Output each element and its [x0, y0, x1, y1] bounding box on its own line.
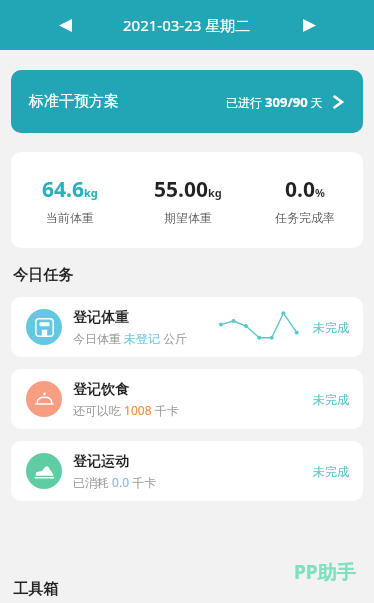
- button[interactable]: 登记体重: [11, 297, 363, 357]
- staticText: 55.00kg: [154, 175, 222, 204]
- staticText: 登记体重: [73, 309, 129, 327]
- staticText: 期望体重: [164, 210, 212, 225]
- staticText: 标准干预方案: [29, 92, 119, 111]
- button[interactable]: 55.00kg: [129, 175, 246, 225]
- staticText: 当前体重: [46, 210, 94, 225]
- button[interactable]: Next day: [292, 8, 326, 42]
- staticText: 已进行 309/90 天: [226, 93, 323, 111]
- staticText: 未完成: [313, 320, 349, 335]
- staticText: 登记饮食: [73, 381, 129, 399]
- staticText: 任务完成率: [275, 210, 335, 225]
- staticText: 今日体重 未登记 公斤: [73, 330, 188, 346]
- staticText: 未完成: [313, 464, 349, 479]
- staticText: 已消耗 0.0 千卡: [73, 474, 157, 490]
- staticText: 未完成: [313, 392, 349, 407]
- staticText: 登记运动: [73, 453, 129, 471]
- staticText: 2021-03-23 星期二: [123, 15, 251, 35]
- staticText: 今日任务: [13, 266, 73, 285]
- staticText: PP助手: [294, 559, 356, 585]
- button[interactable]: 0.0%: [246, 175, 363, 225]
- staticText: 0.0%: [285, 175, 325, 204]
- button[interactable]: 64.6kg: [11, 175, 129, 225]
- staticText: 64.6kg: [42, 175, 98, 204]
- button[interactable]: Previous day: [48, 8, 82, 42]
- staticText: 还可以吃 1008 千卡: [73, 402, 179, 418]
- button[interactable]: 登记运动: [11, 441, 363, 501]
- button[interactable]: 标准干预方案: [11, 70, 363, 133]
- button[interactable]: 登记饮食: [11, 369, 363, 429]
- staticText: 工具箱: [13, 580, 58, 599]
